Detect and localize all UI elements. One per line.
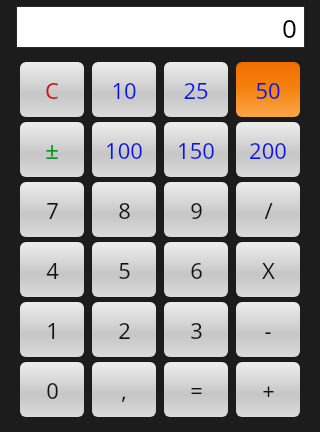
staticText: 150	[177, 135, 215, 165]
button[interactable]: X	[236, 242, 300, 297]
staticText: 8	[118, 195, 131, 225]
staticText: ±	[45, 133, 59, 166]
staticText: C	[45, 75, 59, 105]
button[interactable]: -	[236, 302, 300, 357]
button[interactable]: +	[236, 362, 300, 417]
staticText: -	[264, 315, 272, 345]
button[interactable]: ±	[20, 122, 84, 177]
staticText: /	[264, 195, 273, 225]
staticText: 0	[282, 10, 297, 45]
staticText: 9	[190, 195, 203, 225]
button[interactable]: 0	[20, 362, 84, 417]
staticText: ,	[121, 375, 127, 405]
button[interactable]: 200	[236, 122, 300, 177]
button[interactable]: 2	[92, 302, 156, 357]
staticText: 7	[46, 195, 59, 225]
button[interactable]: 100	[92, 122, 156, 177]
staticText: =	[190, 375, 203, 405]
button[interactable]: 8	[92, 182, 156, 237]
button[interactable]: 6	[164, 242, 228, 297]
button[interactable]: 25	[164, 62, 228, 117]
button[interactable]: 5	[92, 242, 156, 297]
button[interactable]: 0	[16, 6, 305, 48]
staticText: 2	[118, 315, 131, 345]
staticText: 200	[249, 135, 287, 165]
button[interactable]: 7	[20, 182, 84, 237]
staticText: 1	[46, 315, 59, 345]
staticText: 5	[118, 255, 131, 285]
button[interactable]: 1	[20, 302, 84, 357]
staticText: 50	[255, 75, 281, 105]
button[interactable]: 150	[164, 122, 228, 177]
staticText: 25	[183, 75, 209, 105]
button[interactable]: 10	[92, 62, 156, 117]
button[interactable]: /	[236, 182, 300, 237]
staticText: 100	[105, 135, 143, 165]
staticText: 6	[190, 255, 203, 285]
button[interactable]: C	[20, 62, 84, 117]
staticText: 4	[46, 255, 59, 285]
staticText: 3	[190, 315, 203, 345]
staticText: X	[262, 255, 275, 285]
button[interactable]: 4	[20, 242, 84, 297]
staticText: +	[262, 375, 275, 405]
button[interactable]: =	[164, 362, 228, 417]
button[interactable]: 3	[164, 302, 228, 357]
button[interactable]: ,	[92, 362, 156, 417]
staticText: 10	[111, 75, 137, 105]
staticText: 0	[46, 375, 59, 405]
button[interactable]: 50	[236, 62, 300, 117]
button[interactable]: 9	[164, 182, 228, 237]
